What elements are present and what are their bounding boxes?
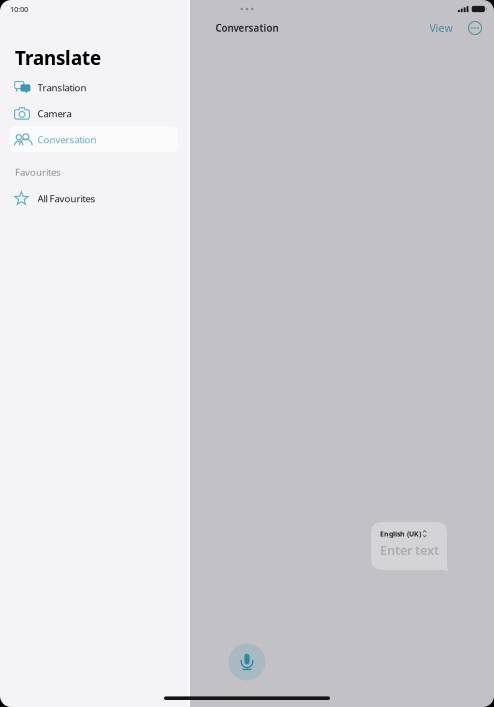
staticText: Favourites — [15, 165, 61, 178]
staticText: Translate — [15, 45, 101, 70]
staticText: View — [429, 21, 452, 35]
button[interactable]: Conversation — [0, 126, 188, 152]
staticText: 10:00 — [10, 4, 28, 14]
staticText: All Favourites — [37, 192, 95, 205]
staticText: Conversation — [215, 21, 278, 35]
staticText: English (UK) — [380, 529, 421, 538]
button[interactable]: More — [463, 16, 486, 39]
staticText: Conversation — [37, 133, 96, 146]
button[interactable]: All Favourites — [0, 185, 188, 211]
staticText: Enter text — [380, 541, 439, 559]
button[interactable]: Translation — [0, 74, 188, 100]
button[interactable]: Camera — [0, 100, 188, 126]
button[interactable]: Record — [225, 640, 269, 684]
staticText: Camera — [37, 107, 71, 120]
staticText: Translation — [37, 81, 86, 94]
button[interactable]: View — [423, 16, 458, 40]
